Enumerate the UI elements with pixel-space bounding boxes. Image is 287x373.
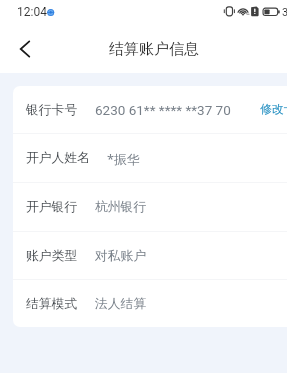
- button[interactable]: 账户类型: [13, 232, 287, 279]
- staticText: 31: [282, 6, 287, 19]
- button[interactable]: 开户人姓名: [13, 134, 287, 182]
- staticText: 杭州银行: [95, 199, 147, 215]
- button[interactable]: Back: [4, 28, 46, 70]
- staticText: 法人结算: [95, 296, 147, 312]
- staticText: *振华: [107, 150, 140, 167]
- button[interactable]: 开户银行: [13, 183, 287, 231]
- staticText: 结算账户信息: [109, 40, 199, 59]
- staticText: 开户人姓名: [26, 150, 90, 166]
- staticText: 银行卡号: [26, 102, 78, 118]
- button[interactable]: 银行卡号: [13, 86, 287, 133]
- staticText: 账户类型: [26, 248, 78, 264]
- staticText: 12:04: [17, 5, 47, 19]
- staticText: 开户银行: [26, 199, 78, 215]
- staticText: 结算模式: [26, 296, 78, 312]
- button[interactable]: 结算模式: [13, 280, 287, 327]
- staticText: 对私账户: [95, 248, 147, 264]
- staticText: 修改卡号: [260, 102, 287, 117]
- staticText: 6230 61** **** **37 70: [95, 102, 231, 118]
